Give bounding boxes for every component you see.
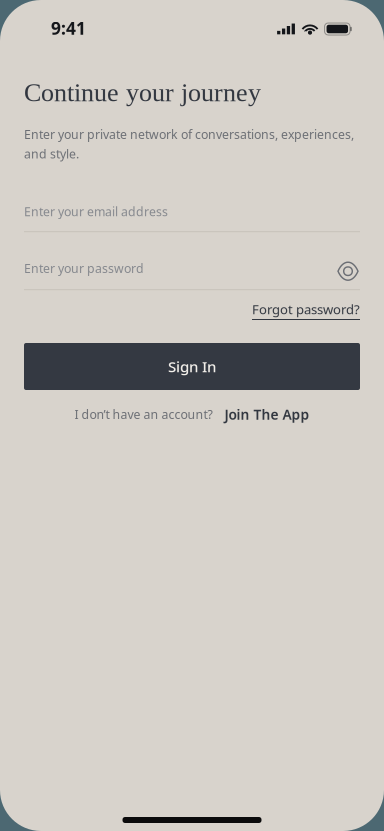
staticText: 9:41 (51, 16, 86, 40)
staticText: Join The App (224, 405, 309, 424)
staticText: Enter your private network of conversati… (24, 126, 354, 162)
staticText: Continue your journey (24, 78, 261, 107)
staticText: Enter your password (24, 260, 144, 277)
staticText: Forgot password? (252, 300, 360, 318)
staticText: Enter your email address (24, 203, 168, 220)
button[interactable]: Join The App (224, 405, 309, 424)
staticText: Sign In (168, 356, 216, 377)
staticText: I don’t have an account? (74, 406, 212, 423)
button[interactable]: Show password (336, 259, 360, 283)
button[interactable]: Sign In (24, 343, 360, 390)
button[interactable]: Forgot password? (252, 300, 360, 320)
